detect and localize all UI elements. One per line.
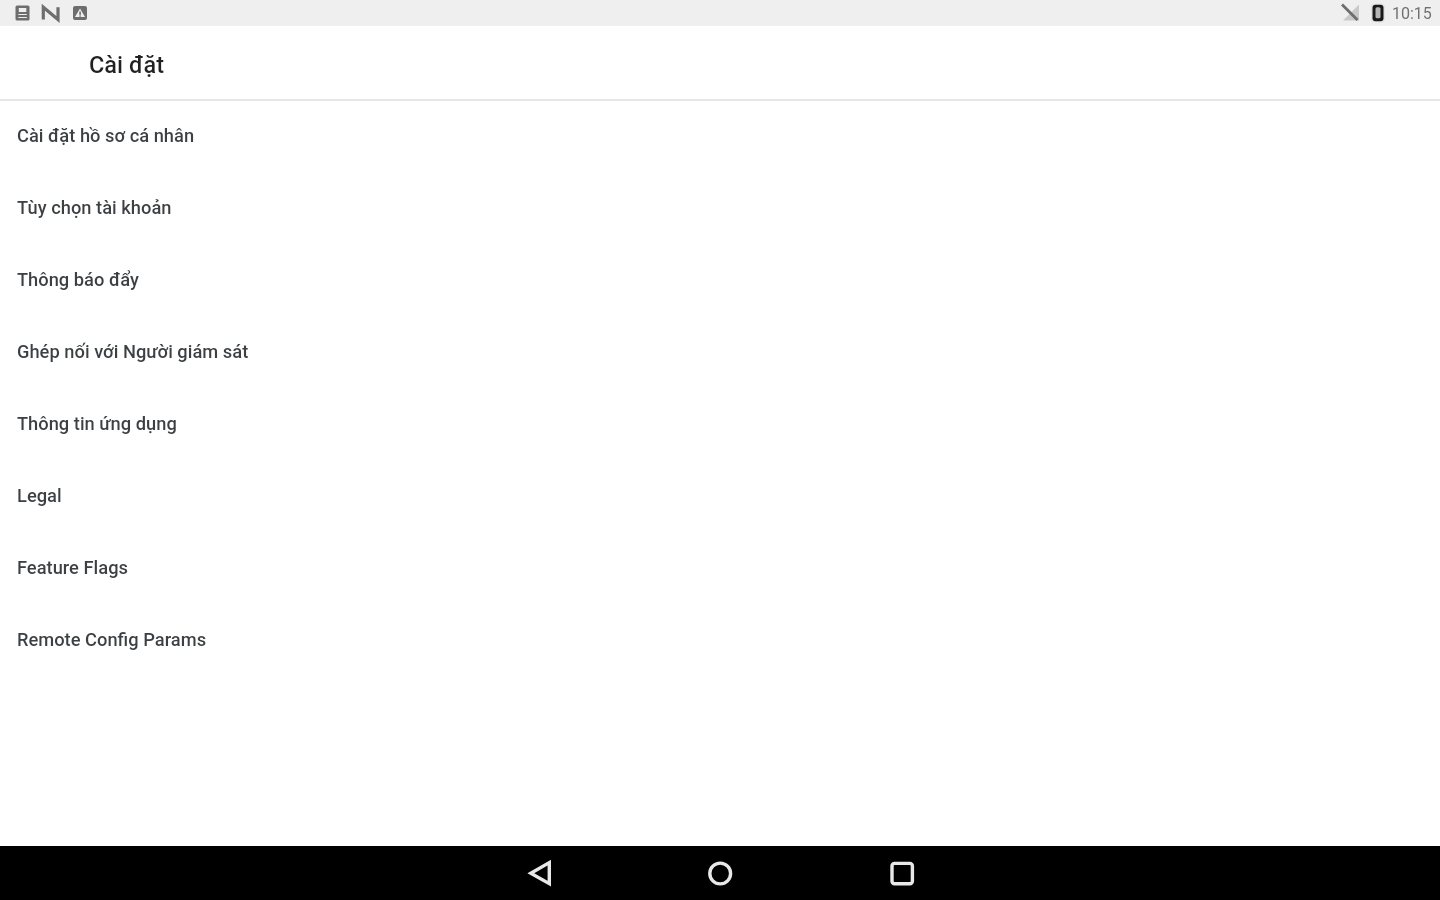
button[interactable]: Thông báo đẩy <box>0 245 1440 317</box>
button[interactable]: Tùy chọn tài khoản <box>0 173 1440 245</box>
staticText: Thông tin ứng dụng <box>17 413 177 434</box>
button[interactable]: Feature Flags <box>0 533 1440 605</box>
staticText: Ghép nối với Người giám sát <box>17 341 249 362</box>
staticText: Cài đặt <box>89 51 164 79</box>
staticText: Thông báo đẩy <box>17 269 139 290</box>
staticText: Cài đặt hồ sơ cá nhân <box>17 125 195 146</box>
button[interactable]: Cài đặt hồ sơ cá nhân <box>0 101 1440 173</box>
staticText: Feature Flags <box>17 557 128 578</box>
button[interactable]: Recent apps <box>862 846 940 900</box>
button[interactable]: Home <box>681 846 759 900</box>
button[interactable]: Remote Config Params <box>0 605 1440 677</box>
staticText: Tùy chọn tài khoản <box>17 197 172 218</box>
button[interactable]: Legal <box>0 461 1440 533</box>
staticText: 10:15 <box>1392 4 1432 23</box>
button[interactable]: Thông tin ứng dụng <box>0 389 1440 461</box>
staticText: Remote Config Params <box>17 629 207 650</box>
staticText: Legal <box>17 485 62 506</box>
button[interactable]: Back <box>501 846 579 900</box>
button[interactable]: Ghép nối với Người giám sát <box>0 317 1440 389</box>
